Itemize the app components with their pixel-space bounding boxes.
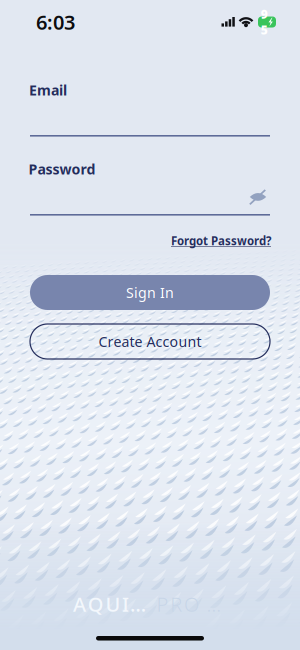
button[interactable]: Sign In: [30, 275, 270, 310]
staticText: Create Account: [98, 332, 201, 351]
staticText: 6:03: [36, 9, 75, 35]
staticText: AQUILA: [73, 591, 156, 617]
staticText: 95: [261, 6, 268, 38]
staticText: Email: [29, 80, 67, 100]
button[interactable]: Forgot Password?: [171, 229, 271, 253]
staticText: Password: [28, 159, 95, 179]
staticText: Sign In: [126, 283, 174, 302]
staticText: Forgot Password?: [171, 233, 271, 249]
button[interactable]: Create Account: [30, 324, 270, 359]
button[interactable]: Show password: [243, 183, 273, 211]
staticText: PRO AI: [156, 591, 227, 617]
